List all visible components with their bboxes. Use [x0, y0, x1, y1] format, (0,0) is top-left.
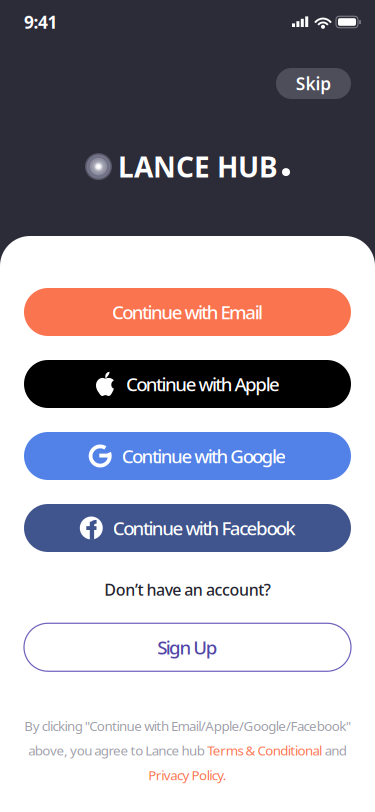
staticText: Continue with Apple: [126, 372, 280, 396]
button[interactable]: Continue with Email: [24, 288, 351, 336]
staticText: and: [322, 742, 347, 759]
staticText: Continue with Email: [112, 300, 263, 324]
button[interactable]: Privacy Policy.: [148, 766, 227, 784]
staticText: Continue with Facebook: [113, 516, 295, 540]
staticText: Don’t have an account?: [104, 579, 271, 600]
staticText: LANCE HUB: [118, 148, 278, 185]
staticText: Continue with Google: [122, 444, 286, 468]
staticText: Privacy Policy.: [148, 766, 227, 784]
button[interactable]: Skip: [276, 68, 351, 99]
staticText: above, you agree to Lance hub: [28, 742, 207, 759]
button[interactable]: Continue with Facebook: [24, 504, 351, 552]
button[interactable]: Continue with Apple: [24, 360, 351, 408]
staticText: Sign Up: [157, 635, 218, 660]
staticText: Terms & Conditional: [207, 742, 322, 759]
button[interactable]: Sign Up: [24, 623, 351, 671]
staticText: 9:41: [24, 10, 57, 33]
staticText: By clicking "Continue with Email/Apple/G…: [24, 717, 351, 735]
button[interactable]: Terms & Conditional: [207, 742, 322, 759]
staticText: Skip: [296, 72, 331, 95]
button[interactable]: Continue with Google: [24, 432, 351, 480]
